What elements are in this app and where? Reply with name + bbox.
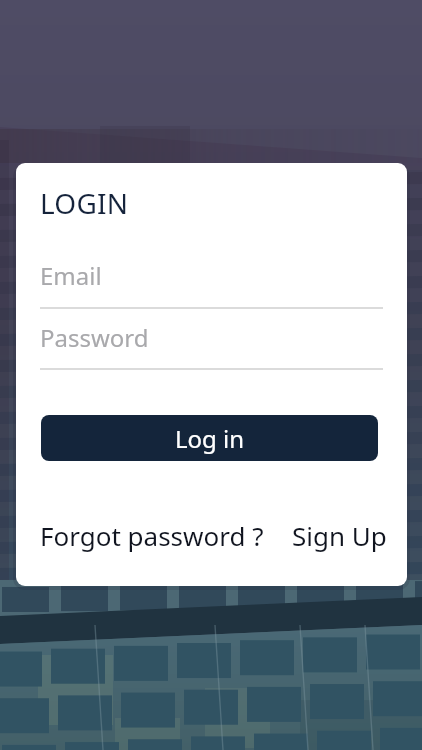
staticText: Log in <box>175 422 245 455</box>
staticText: Password <box>40 321 149 354</box>
staticText: Sign Up <box>292 518 387 553</box>
button[interactable]: Forgot password ? <box>40 515 264 555</box>
button[interactable]: Email <box>40 257 383 309</box>
staticText: LOGIN <box>40 184 129 222</box>
button[interactable]: Password <box>40 319 383 369</box>
staticText: Email <box>40 259 102 292</box>
button[interactable]: Sign Up <box>292 515 387 555</box>
staticText: Forgot password ? <box>40 518 264 553</box>
button[interactable]: Log in <box>41 415 378 461</box>
